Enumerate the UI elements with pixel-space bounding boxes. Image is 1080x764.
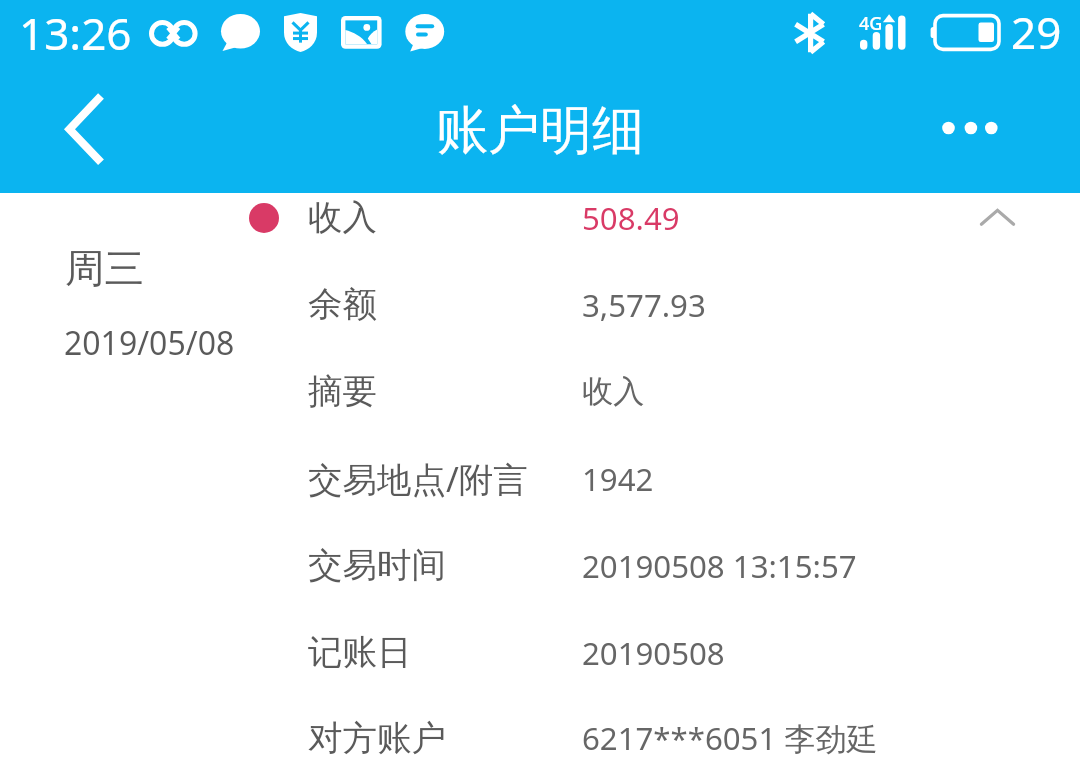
staticText: 收入 — [582, 372, 645, 411]
staticText: 收入 — [308, 196, 377, 239]
staticText: 3,577.93 — [582, 284, 706, 326]
staticText: 2019/05/08 — [64, 321, 235, 365]
staticText: 对方账户 — [308, 717, 446, 760]
staticText: 交易时间 — [308, 544, 446, 587]
button[interactable]: 记账日 — [0, 609, 1080, 696]
staticText: 20190508 — [582, 632, 725, 674]
staticText: 13:26 — [19, 3, 132, 63]
staticText: 20190508 13:15:57 — [582, 545, 857, 587]
button[interactable]: 摘要 — [0, 348, 1080, 435]
button[interactable]: 交易地点/附言 — [0, 435, 1080, 522]
staticText: 周三 — [65, 244, 144, 294]
button[interactable]: 交易时间 — [0, 522, 1080, 609]
button[interactable]: Back — [0, 68, 170, 193]
staticText: 6217***6051 李劲廷 — [582, 717, 878, 760]
staticText: 余额 — [308, 283, 377, 326]
staticText: 交易地点/附言 — [308, 455, 528, 502]
button[interactable]: Collapse — [947, 193, 1047, 257]
staticText: 账户明细 — [436, 98, 644, 164]
button[interactable]: More options — [912, 68, 1042, 193]
staticText: 摘要 — [308, 370, 377, 413]
button[interactable]: 余额 — [0, 261, 1080, 348]
staticText: 4G — [859, 11, 883, 36]
staticText: 记账日 — [308, 631, 412, 674]
button[interactable]: 对方账户 — [0, 695, 1080, 764]
staticText: 29 — [1011, 2, 1062, 62]
staticText: 1942 — [582, 458, 654, 500]
button[interactable]: 收入 — [0, 174, 1080, 261]
staticText: 508.49 — [582, 197, 680, 239]
